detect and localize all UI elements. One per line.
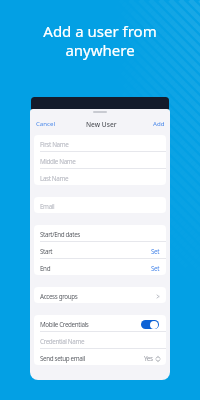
button[interactable]: Last Name <box>34 169 166 185</box>
button[interactable]: Start <box>34 242 166 258</box>
staticText: Add a user from anywhere <box>0 21 200 60</box>
staticText: Start <box>40 247 53 256</box>
button[interactable]: Access groups <box>34 287 166 303</box>
other: Open access groups <box>157 295 159 298</box>
staticText: Email <box>40 202 55 211</box>
staticText: Set <box>151 247 160 256</box>
staticText: Yes <box>144 354 153 363</box>
button[interactable]: Start/End dates <box>34 225 166 241</box>
other: Mobile Credentials enabled <box>141 320 159 329</box>
staticText: Last Name <box>40 174 69 183</box>
button[interactable]: Add <box>153 119 165 127</box>
staticText: End <box>40 264 51 273</box>
staticText: Credential Name <box>40 337 85 346</box>
staticText: New User <box>86 120 117 129</box>
button[interactable]: Mobile Credentials <box>34 315 166 331</box>
button[interactable]: Send setup email <box>34 349 166 365</box>
staticText: Access groups <box>40 292 78 301</box>
staticText: Mobile Credentials <box>40 320 89 329</box>
staticText: Set <box>151 264 160 273</box>
button[interactable]: Credential Name <box>34 332 166 348</box>
button[interactable]: End <box>34 259 166 275</box>
staticText: Send setup email <box>40 354 85 363</box>
staticText: Middle Name <box>40 157 76 166</box>
button[interactable]: Cancel <box>36 119 55 127</box>
button[interactable]: Middle Name <box>34 152 166 168</box>
staticText: Start/End dates <box>40 230 80 239</box>
button[interactable]: Email <box>34 197 166 213</box>
staticText: First Name <box>40 140 69 149</box>
button[interactable]: First Name <box>34 135 166 151</box>
staticText: Cancel <box>36 119 55 127</box>
staticText: Add <box>153 119 165 127</box>
